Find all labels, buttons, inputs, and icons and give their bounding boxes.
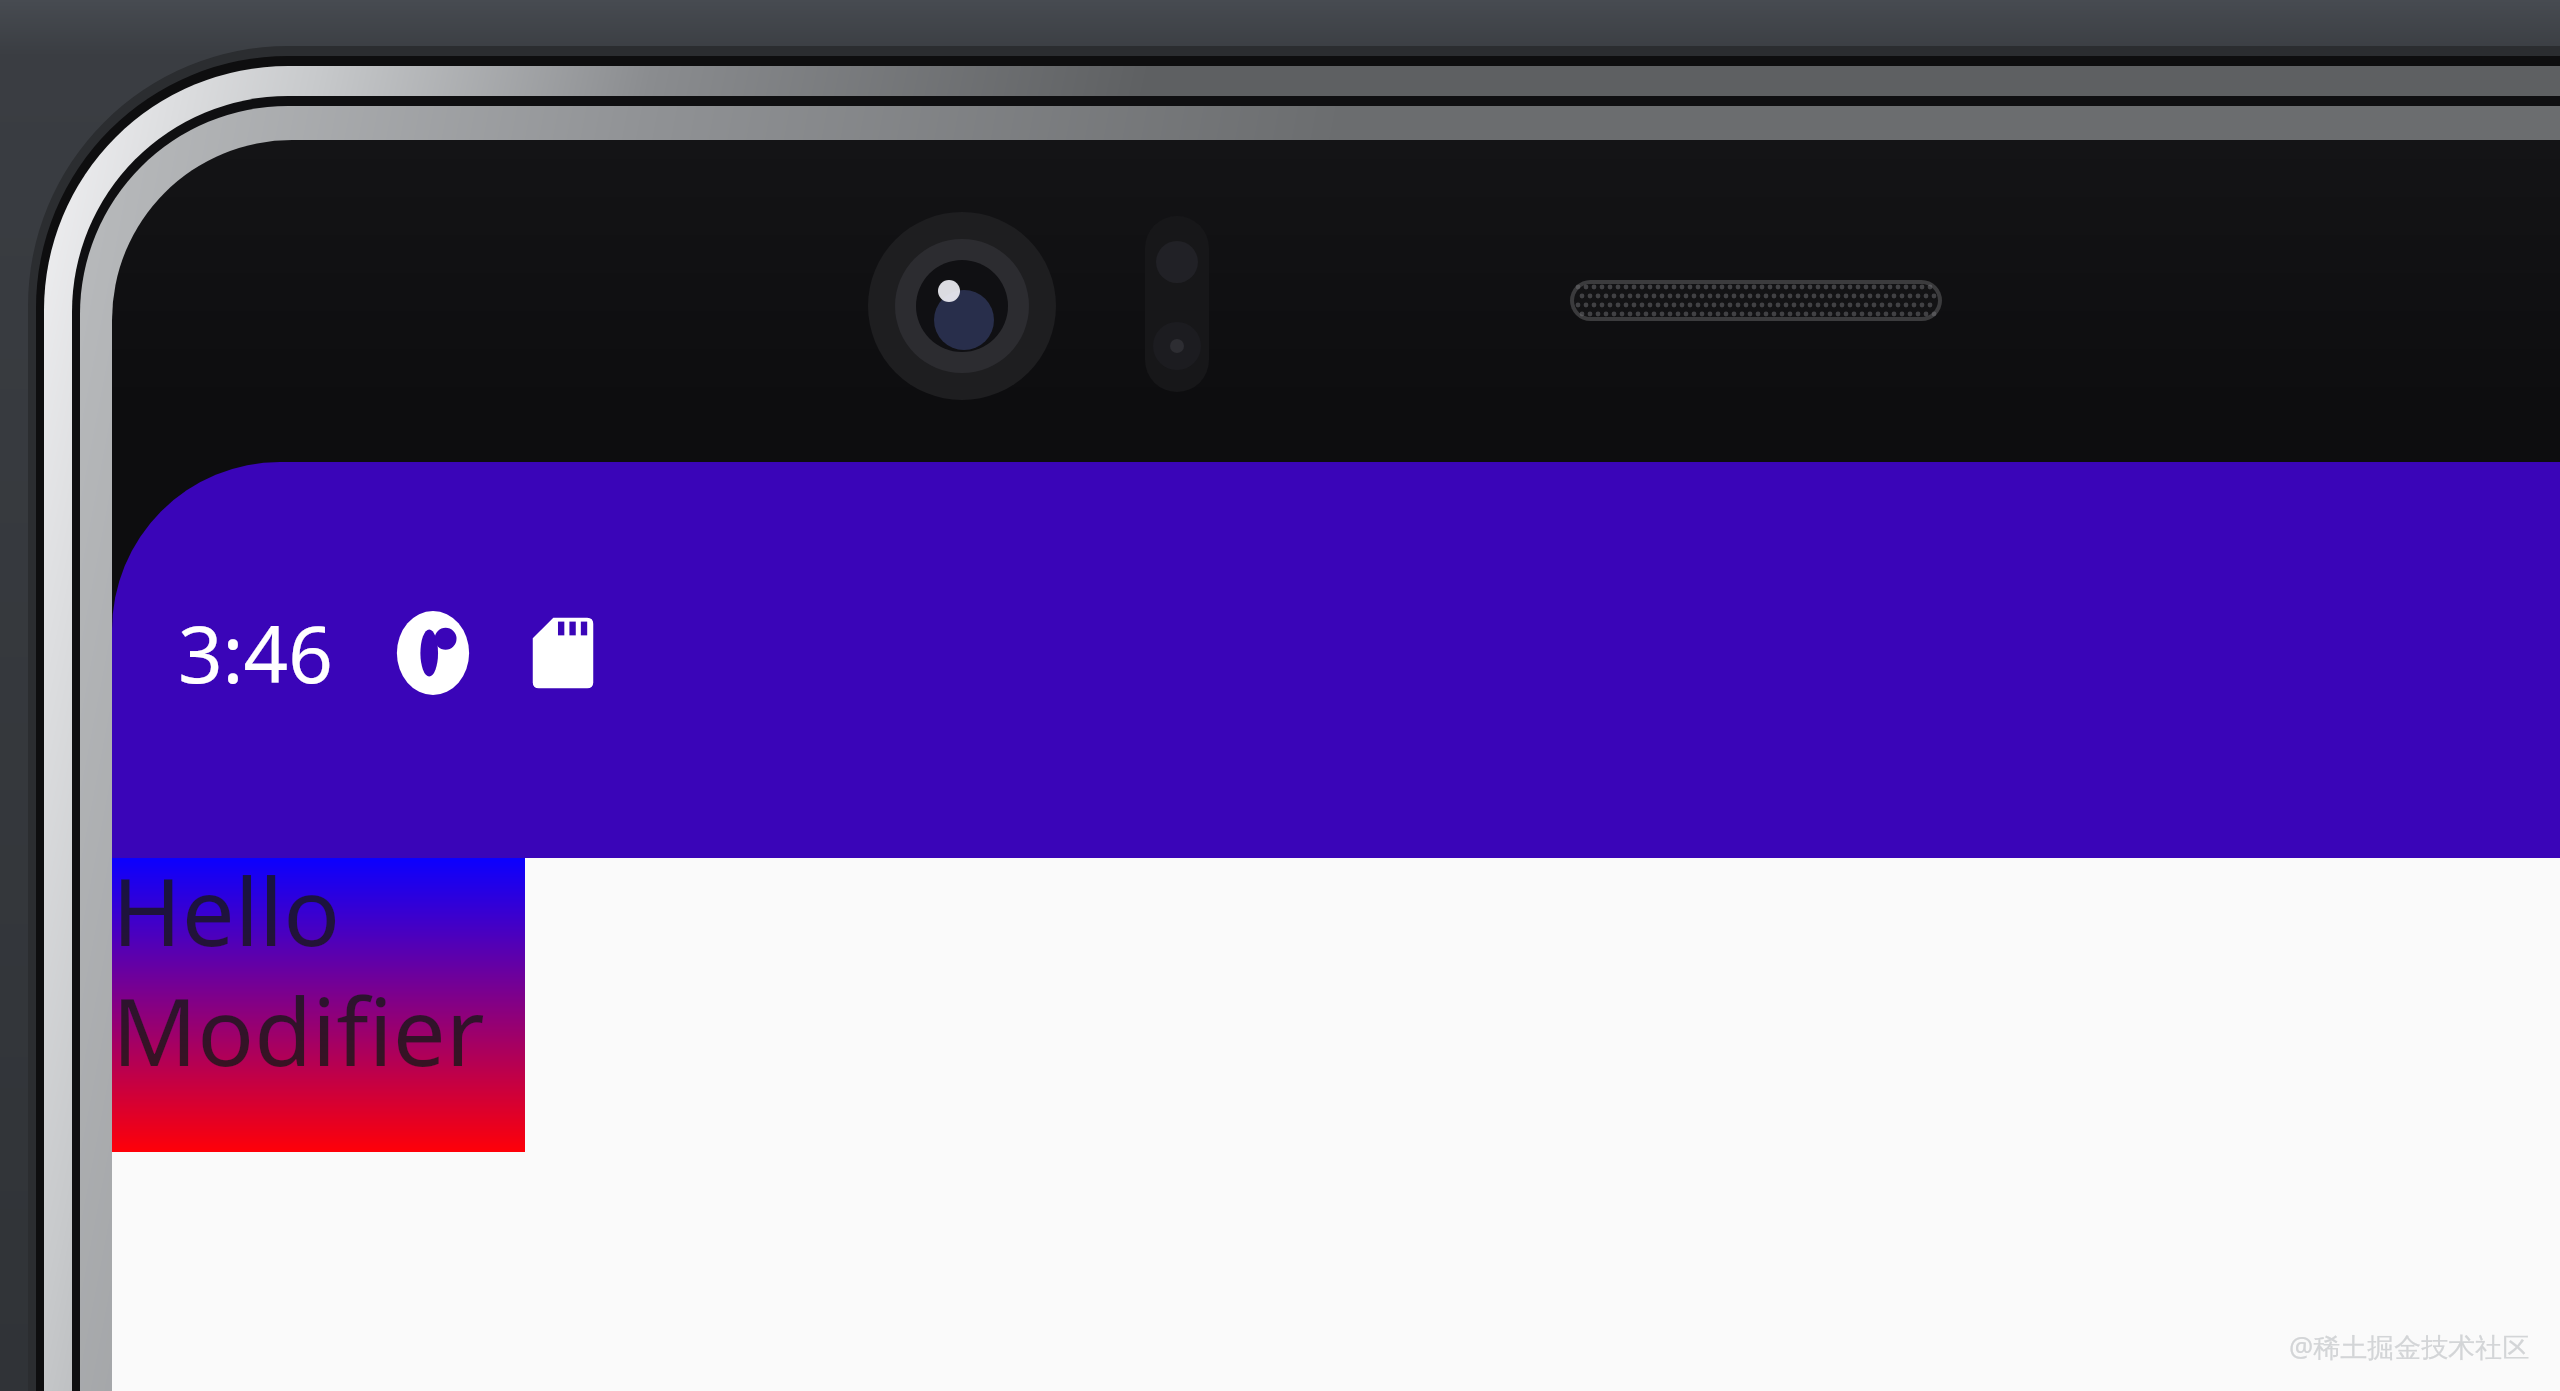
button[interactable]: Do not disturb <box>391 611 475 695</box>
staticText: @稀土掘金技术社区 <box>2289 1328 2530 1365</box>
button[interactable]: Hello Modifier <box>112 858 525 1152</box>
staticText: 3:46 <box>178 600 333 706</box>
staticText: Hello Modifier <box>112 846 525 1094</box>
button[interactable]: SD card <box>521 611 605 695</box>
